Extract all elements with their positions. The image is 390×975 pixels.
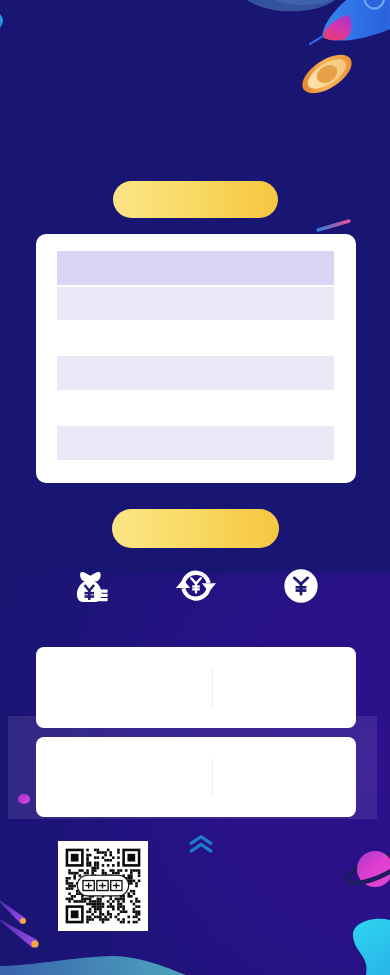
- button[interactable]: [36, 234, 356, 483]
- button[interactable]: [113, 181, 278, 218]
- button[interactable]: [36, 647, 356, 728]
- button[interactable]: Money bag: [74, 569, 108, 603]
- button[interactable]: Yen: [284, 569, 318, 603]
- button[interactable]: QR code: [58, 841, 148, 931]
- button[interactable]: [36, 737, 356, 817]
- button[interactable]: Scroll up: [186, 831, 216, 859]
- button[interactable]: Exchange: [175, 568, 217, 602]
- button[interactable]: [112, 509, 279, 548]
